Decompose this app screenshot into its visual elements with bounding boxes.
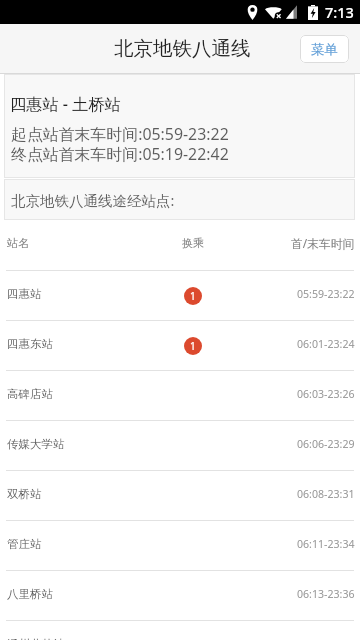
staticText: 高碑店站 <box>7 387 53 401</box>
staticText: 四惠站 - 土桥站 <box>10 93 121 115</box>
staticText: 7:13 <box>325 2 354 22</box>
staticText: 06:01-23:24 <box>297 337 355 351</box>
staticText: 1 <box>190 339 196 353</box>
staticText: 八里桥站 <box>7 587 53 601</box>
button[interactable]: 四惠站 <box>0 271 360 320</box>
button[interactable]: 通州北苑站 <box>0 621 360 640</box>
staticText: 06:13-23:36 <box>297 587 355 601</box>
staticText: 菜单 <box>311 41 338 58</box>
staticText: 四惠站 <box>7 287 42 301</box>
staticText: 管庄站 <box>7 537 42 551</box>
staticText: 06:03-23:26 <box>297 387 355 401</box>
staticText: 起点站首末车时间:05:59-23:22 终点站首末车时间:05:19-22:4… <box>11 123 229 164</box>
button[interactable]: 传媒大学站 <box>0 421 360 470</box>
staticText: 06:06-23:29 <box>297 437 355 451</box>
button[interactable]: 四惠东站 <box>0 321 360 370</box>
button[interactable]: 双桥站 <box>0 471 360 520</box>
staticText: 双桥站 <box>7 487 42 501</box>
button[interactable]: 高碑店站 <box>0 371 360 420</box>
staticText: 05:59-23:22 <box>297 287 355 301</box>
staticText: 北京地铁八通线 <box>114 36 251 61</box>
staticText: 06:08-23:31 <box>297 487 355 501</box>
staticText: 四惠东站 <box>7 337 53 351</box>
button[interactable]: 八里桥站 <box>0 571 360 620</box>
staticText: 1 <box>190 289 196 303</box>
staticText: 06:11-23:34 <box>297 537 355 551</box>
staticText: 通州北苑站 <box>7 637 65 640</box>
staticText: 换乘 <box>182 236 204 250</box>
staticText: 站名 <box>7 236 29 250</box>
staticText: 首/末车时间 <box>291 235 355 251</box>
staticText: 北京地铁八通线途经站点: <box>11 190 175 210</box>
button[interactable]: 管庄站 <box>0 521 360 570</box>
button[interactable]: 菜单 <box>300 35 349 63</box>
staticText: 传媒大学站 <box>7 437 65 451</box>
